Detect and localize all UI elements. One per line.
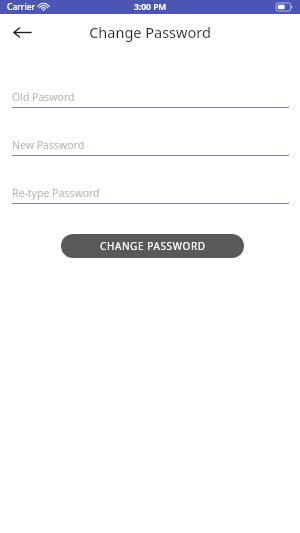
button[interactable]: Back xyxy=(6,16,38,48)
staticText: Carrier xyxy=(7,1,36,13)
staticText: Old Pasword xyxy=(12,90,75,104)
button[interactable]: Old Pasword xyxy=(12,90,289,108)
staticText: New Password xyxy=(12,138,85,152)
staticText: CHANGE PASSWORD xyxy=(100,239,206,253)
staticText: 3:00 PM xyxy=(134,1,167,13)
button[interactable]: Re-type Password xyxy=(12,186,289,204)
button[interactable]: CHANGE PASSWORD xyxy=(61,234,244,258)
button[interactable]: New Password xyxy=(12,138,289,156)
staticText: Re-type Password xyxy=(12,186,100,200)
staticText: Change Password xyxy=(89,22,211,42)
